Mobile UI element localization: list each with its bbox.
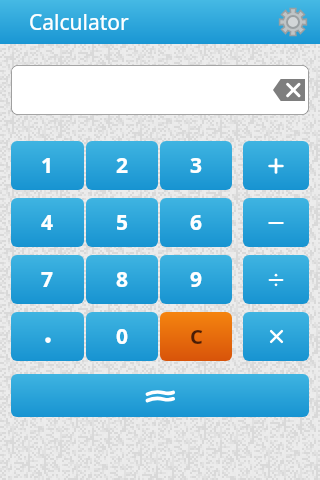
staticText: 7 — [41, 265, 54, 294]
staticText: Calculator — [29, 8, 129, 37]
staticText: 1 — [41, 151, 54, 180]
button[interactable] — [243, 312, 309, 361]
staticText: 6 — [190, 208, 203, 237]
staticText: 5 — [116, 208, 129, 237]
button[interactable] — [243, 141, 309, 190]
button[interactable]: 7 — [11, 255, 84, 304]
button[interactable] — [11, 312, 84, 361]
button[interactable]: 5 — [86, 198, 158, 247]
staticText: 8 — [116, 265, 129, 294]
staticText: 3 — [190, 151, 203, 180]
button[interactable]: 2 — [86, 141, 158, 190]
button[interactable]: 3 — [160, 141, 232, 190]
staticText: C — [190, 323, 203, 350]
button[interactable]: Backspace — [11, 65, 309, 115]
button[interactable] — [11, 374, 309, 417]
staticText: 0 — [116, 322, 129, 351]
button[interactable]: 9 — [160, 255, 232, 304]
staticText: 4 — [41, 208, 54, 237]
button[interactable]: C — [160, 312, 232, 361]
button[interactable]: Settings — [279, 8, 307, 36]
button[interactable]: 8 — [86, 255, 158, 304]
staticText: 9 — [190, 265, 203, 294]
button[interactable]: 0 — [86, 312, 158, 361]
button[interactable]: Backspace — [273, 79, 305, 101]
button[interactable] — [243, 198, 309, 247]
button[interactable]: 6 — [160, 198, 232, 247]
button[interactable]: 1 — [11, 141, 84, 190]
button[interactable]: 4 — [11, 198, 84, 247]
button[interactable] — [243, 255, 309, 304]
staticText: 2 — [116, 151, 129, 180]
